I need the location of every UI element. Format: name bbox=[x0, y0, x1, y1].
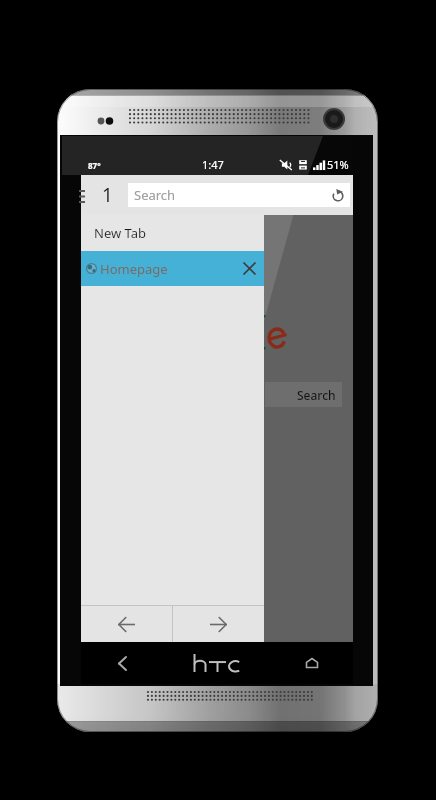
staticText: Homepage bbox=[100, 260, 168, 278]
staticText: 51% bbox=[327, 157, 349, 172]
staticText: 1 bbox=[102, 182, 113, 208]
staticText: 87° bbox=[88, 160, 101, 171]
button[interactable]: Tabs bbox=[86, 175, 128, 215]
button[interactable]: Search bbox=[265, 382, 342, 407]
staticText: Search bbox=[297, 387, 336, 403]
button[interactable]: Search bbox=[128, 183, 350, 207]
staticText: Search bbox=[134, 186, 176, 204]
button[interactable]: Homepage bbox=[81, 251, 264, 286]
button[interactable]: New Tab bbox=[81, 214, 264, 251]
button[interactable]: Back bbox=[81, 642, 164, 684]
button[interactable]: Menu bbox=[81, 175, 86, 215]
staticText: New Tab bbox=[94, 224, 147, 242]
button[interactable]: Home bbox=[271, 642, 353, 684]
button[interactable]: Reload bbox=[326, 183, 350, 207]
button[interactable]: Close tab bbox=[234, 251, 264, 286]
staticText: 1:47 bbox=[202, 157, 224, 172]
button[interactable]: Forward bbox=[173, 606, 264, 642]
button[interactable]: Back bbox=[81, 606, 172, 642]
